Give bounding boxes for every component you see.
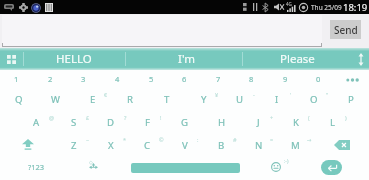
- button[interactable]: Emoji: [259, 156, 293, 177]
- button[interactable]: 5: [133, 68, 170, 89]
- button[interactable]: Y: [185, 89, 222, 110]
- staticText: D: [107, 116, 115, 129]
- staticText: :: [197, 136, 199, 143]
- staticText: ?: [124, 114, 127, 121]
- staticText: ©: [159, 136, 164, 143]
- staticText: =: [270, 136, 274, 143]
- button[interactable]: Space: [131, 163, 240, 173]
- staticText: 4: [115, 74, 120, 84]
- button[interactable]: E: [74, 89, 111, 110]
- button[interactable]: 9: [267, 68, 304, 89]
- staticText: Thu 25/09: [311, 3, 342, 12]
- button[interactable]: D: [92, 112, 129, 133]
- button[interactable]: 2: [32, 68, 69, 89]
- staticText: S: [71, 116, 77, 129]
- staticText: I: [275, 93, 279, 106]
- staticText: C: [144, 139, 151, 152]
- staticText: N: [255, 139, 263, 152]
- button[interactable]: X: [92, 135, 129, 156]
- staticText: R: [127, 93, 133, 106]
- staticText: Send: [334, 23, 358, 37]
- button[interactable]: N: [240, 135, 277, 156]
- button[interactable]: Q: [0, 89, 37, 110]
- button[interactable]: ?123: [19, 156, 53, 177]
- button[interactable]: A: [18, 112, 55, 133]
- button[interactable]: H: [203, 112, 240, 133]
- button[interactable]: 3: [65, 68, 102, 89]
- button[interactable]: Change keyboard language: [76, 156, 110, 177]
- staticText: F: [145, 116, 150, 129]
- staticText: @: [49, 114, 54, 121]
- staticText: K: [293, 116, 299, 129]
- button[interactable]: I'm: [125, 48, 248, 70]
- staticText: P: [348, 93, 354, 106]
- staticText: ": [326, 91, 329, 98]
- button[interactable]: More symbols: [335, 70, 369, 90]
- staticText: →: [307, 137, 312, 143]
- button[interactable]: Shift: [11, 134, 45, 155]
- staticText: ': [290, 91, 292, 98]
- staticText: A: [33, 116, 40, 129]
- button[interactable]: 4: [99, 68, 136, 89]
- staticText: #: [233, 136, 237, 143]
- button[interactable]: R: [111, 89, 148, 110]
- staticText: +: [270, 114, 274, 121]
- staticText: -: [253, 91, 255, 98]
- button[interactable]: Backspace: [325, 134, 359, 155]
- staticText: 0: [316, 74, 321, 84]
- button[interactable]: O: [295, 89, 332, 110]
- staticText: Q: [15, 93, 23, 106]
- staticText: W: [51, 93, 60, 106]
- button[interactable]: Please: [242, 48, 352, 70]
- button[interactable]: W: [37, 89, 74, 110]
- staticText: !: [160, 114, 162, 121]
- button[interactable]: HELLO: [23, 48, 125, 70]
- button[interactable]: Keyboard layouts: [0, 48, 23, 70]
- button[interactable]: 0: [300, 68, 337, 89]
- staticText: 3: [81, 74, 86, 84]
- staticText: ◇: [89, 159, 93, 165]
- staticText: *: [123, 136, 127, 143]
- button[interactable]: T: [148, 89, 185, 110]
- button[interactable]: 8: [233, 68, 270, 89]
- button[interactable]: I: [258, 89, 295, 110]
- staticText: Please: [280, 51, 315, 67]
- button[interactable]: S: [55, 112, 92, 133]
- button[interactable]: V: [166, 135, 203, 156]
- staticText: 7: [216, 74, 221, 84]
- staticText: €: [104, 91, 108, 98]
- staticText: U: [236, 93, 244, 106]
- button[interactable]: Expand suggestions: [352, 48, 369, 70]
- button[interactable]: 1: [0, 68, 35, 89]
- staticText: O: [310, 93, 318, 106]
- staticText: X: [108, 139, 114, 152]
- staticText: ): [345, 114, 347, 121]
- staticText: I'm: [178, 51, 195, 67]
- staticText: Y: [201, 93, 207, 106]
- staticText: 1: [14, 74, 19, 84]
- button[interactable]: B: [203, 135, 240, 156]
- button[interactable]: L: [314, 112, 351, 133]
- button[interactable]: C: [129, 135, 166, 156]
- staticText: 18:19: [343, 1, 368, 14]
- button[interactable]: Enter: [321, 160, 342, 175]
- button[interactable]: J: [240, 112, 277, 133]
- button[interactable]: Z: [55, 135, 92, 156]
- button[interactable]: K: [277, 112, 314, 133]
- button[interactable]: 7: [200, 68, 237, 89]
- staticText: 8: [249, 74, 254, 84]
- button[interactable]: Send: [330, 20, 361, 39]
- staticText: 2: [48, 74, 53, 84]
- staticText: 6: [182, 74, 187, 84]
- staticText: J: [257, 116, 260, 129]
- staticText: L: [330, 116, 336, 129]
- button[interactable]: 6: [166, 68, 203, 89]
- button[interactable]: U: [221, 89, 258, 110]
- button[interactable]: P: [332, 89, 369, 110]
- button[interactable]: G: [166, 112, 203, 133]
- staticText: ?123: [28, 162, 45, 172]
- button[interactable]: M: [277, 135, 314, 156]
- button[interactable]: F: [129, 112, 166, 133]
- staticText: T: [164, 93, 170, 106]
